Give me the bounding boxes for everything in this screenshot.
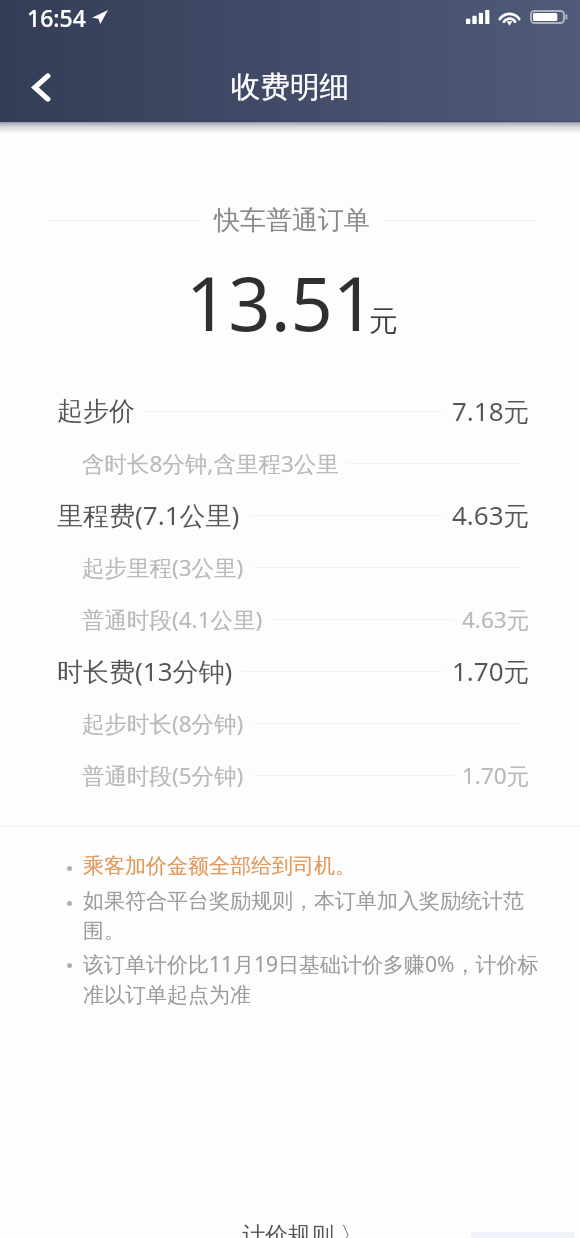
staticText: 计价规则 〉 [242, 1218, 363, 1238]
button[interactable]: Back [15, 61, 67, 113]
staticText: 4.63元 [462, 604, 530, 635]
staticText: 16:54 [27, 2, 86, 33]
staticText: 13.51 [186, 252, 376, 353]
staticText: 1.70元 [452, 653, 530, 689]
staticText: 该订单计价比11月19日基础计价多赚0%，计价标准以订单起点为准 [83, 950, 543, 1009]
staticText: 1.70元 [462, 760, 530, 791]
staticText: 快车普通订单 [214, 204, 370, 237]
staticText: 4.63元 [452, 497, 530, 533]
staticText: 7.18元 [452, 393, 530, 429]
staticText: 起步价 [57, 395, 135, 428]
staticText: 起步时长(8分钟) [82, 708, 244, 739]
staticText: 收费明细 [231, 69, 349, 106]
staticText: 里程费(7.1公里) [57, 497, 240, 533]
staticText: 起步里程(3公里) [82, 552, 244, 583]
staticText: 乘客加价金额全部给到司机。 [83, 853, 356, 879]
staticText: 元 [369, 303, 398, 340]
staticText: 普通时段(5分钟) [82, 760, 244, 791]
staticText: 如果符合平台奖励规则，本订单加入奖励统计范围。 [83, 888, 543, 945]
staticText: 含时长8分钟,含里程3公里 [82, 448, 339, 479]
staticText: 时长费(13分钟) [57, 653, 233, 689]
staticText: 普通时段(4.1公里) [82, 604, 263, 635]
button[interactable]: 计价规则 〉 [234, 1204, 371, 1235]
